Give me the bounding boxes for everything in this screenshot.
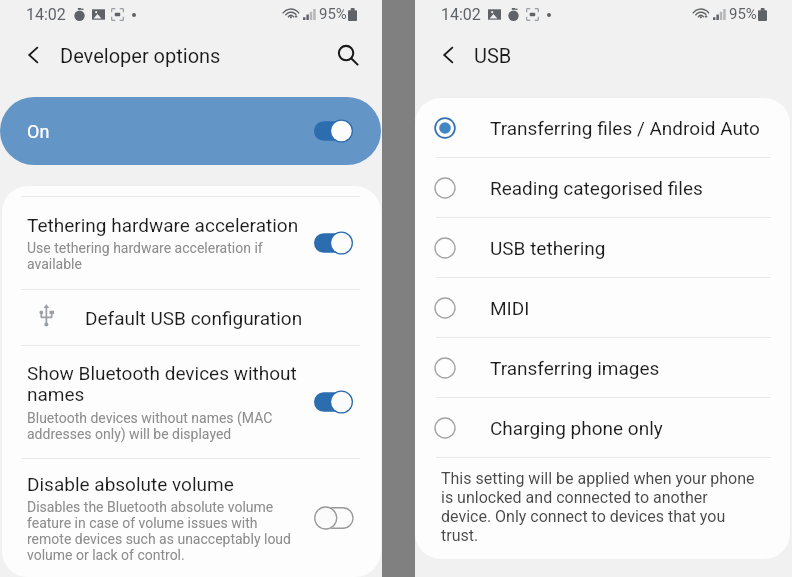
button[interactable]: Tethering hardware acceleration (2, 197, 381, 289)
button[interactable]: On (0, 97, 381, 165)
button[interactable]: Transferring images (415, 338, 790, 397)
staticText: 95% (729, 5, 757, 23)
button[interactable]: Navigate up (431, 37, 467, 73)
staticText: USB tethering (490, 237, 606, 259)
staticText: Charging phone only (490, 417, 663, 439)
button[interactable]: Transferring files / Android Auto (415, 98, 790, 157)
staticText: 14:02 (441, 5, 481, 24)
button[interactable]: Show Bluetooth devices without names (2, 346, 381, 458)
staticText: Transferring images (490, 357, 660, 379)
staticText: Transferring files / Android Auto (490, 117, 760, 139)
staticText: Default USB configuration (85, 307, 303, 329)
staticText: MIDI (490, 297, 530, 319)
staticText: Tethering hardware acceleration (27, 214, 299, 236)
staticText: Disables the Bluetooth absolute volume f… (27, 499, 291, 563)
staticText: Show Bluetooth devices without names (27, 362, 297, 406)
staticText: 95% (319, 5, 347, 23)
staticText: This setting will be applied when your p… (441, 469, 755, 545)
staticText: On (27, 121, 50, 142)
staticText: USB (474, 44, 512, 67)
staticText: 14:02 (26, 5, 66, 24)
staticText: Bluetooth devices without names (MAC add… (27, 410, 273, 442)
button[interactable]: Search (330, 37, 366, 73)
button[interactable]: USB tethering (415, 218, 790, 277)
button[interactable]: Charging phone only (415, 398, 790, 457)
button[interactable]: Disable absolute volume (2, 459, 381, 577)
staticText: Developer options (60, 44, 221, 67)
button[interactable]: Reading categorised files (415, 158, 790, 217)
button[interactable]: MIDI (415, 278, 790, 337)
button[interactable]: Navigate up (16, 37, 52, 73)
staticText: Disable absolute volume (27, 473, 234, 495)
staticText: Use tethering hardware acceleration if a… (27, 240, 263, 272)
button[interactable]: Default USB configuration (2, 290, 381, 345)
staticText: Reading categorised files (490, 177, 703, 199)
